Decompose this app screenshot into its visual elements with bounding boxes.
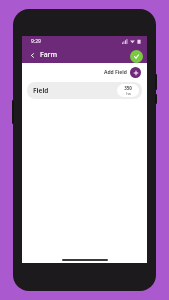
staticText: 350	[124, 85, 132, 91]
staticText: Farm	[40, 50, 57, 60]
button[interactable]: Add Field	[103, 66, 142, 79]
staticText: ha	[126, 91, 131, 96]
staticText: 9:29	[31, 38, 41, 45]
button[interactable]: Save	[130, 50, 143, 63]
button[interactable]: Field	[27, 82, 142, 99]
button[interactable]: Back	[27, 50, 37, 60]
staticText: Field	[33, 86, 49, 95]
staticText: Add Field	[104, 69, 127, 76]
